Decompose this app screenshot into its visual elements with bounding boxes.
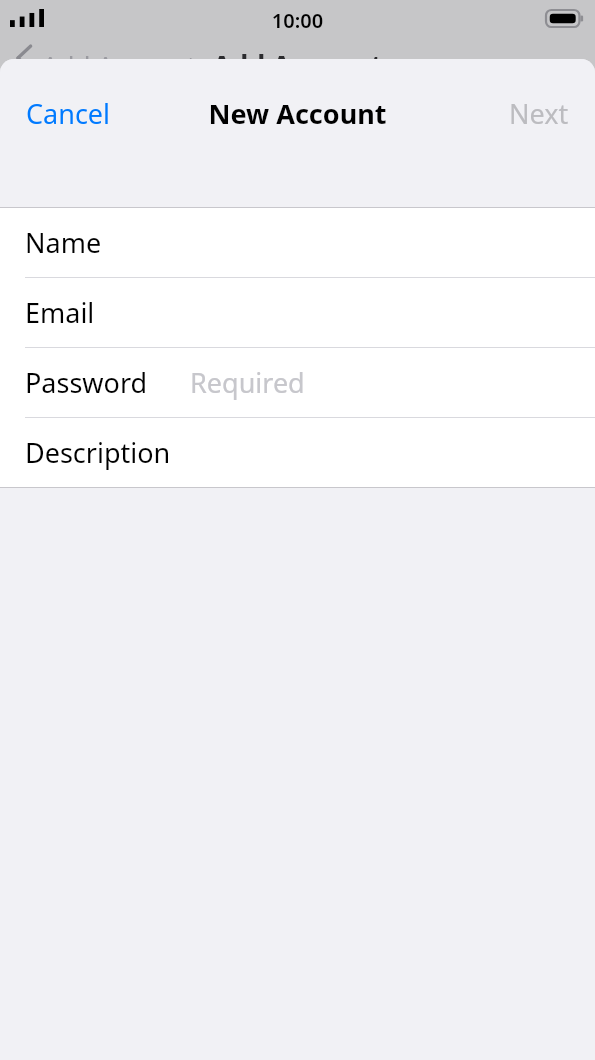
staticText: Name xyxy=(25,224,102,261)
button[interactable]: Email xyxy=(0,278,595,347)
button[interactable]: Name xyxy=(0,208,595,277)
staticText: Description xyxy=(25,434,171,471)
staticText: Add Account xyxy=(42,47,197,82)
staticText: 10:00 xyxy=(0,7,595,34)
other: Back xyxy=(16,45,32,71)
button[interactable]: Description xyxy=(0,418,595,487)
staticText: Next xyxy=(509,95,569,132)
staticText: New Account xyxy=(0,95,595,132)
staticText: Email xyxy=(25,294,95,331)
staticText: Password xyxy=(25,364,148,401)
button[interactable]: Next xyxy=(493,85,585,142)
staticText: Required xyxy=(190,364,305,401)
button[interactable]: Password xyxy=(0,348,595,417)
staticText: Cancel xyxy=(26,95,111,132)
staticText: Add Account xyxy=(0,46,595,83)
button[interactable]: Cancel xyxy=(10,85,127,142)
